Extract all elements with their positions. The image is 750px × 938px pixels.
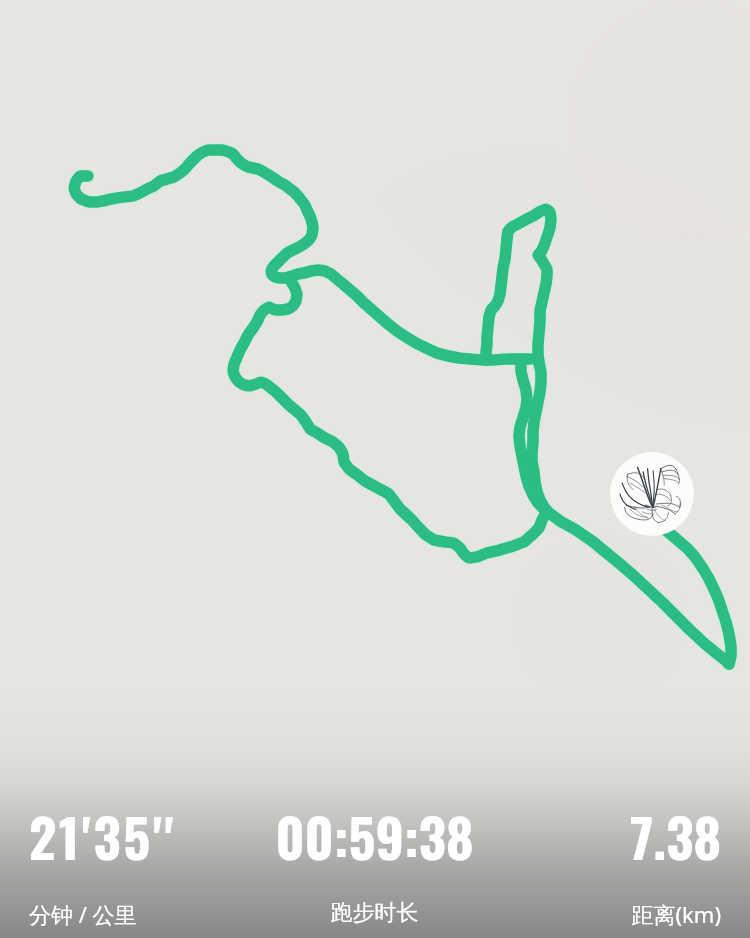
staticText: 21'35'': [29, 797, 259, 876]
staticText: 分钟 / 公里: [29, 899, 259, 929]
button[interactable]: Route end photo: [610, 452, 694, 536]
button[interactable]: 00:59:38: [259, 797, 490, 927]
staticText: 00:59:38: [259, 797, 490, 876]
button[interactable]: 21'35'': [29, 797, 259, 929]
staticText: 7.38: [490, 797, 721, 876]
button[interactable]: 7.38: [490, 797, 721, 929]
staticText: 距离(km): [490, 899, 721, 929]
staticText: 跑步时长: [259, 899, 490, 927]
